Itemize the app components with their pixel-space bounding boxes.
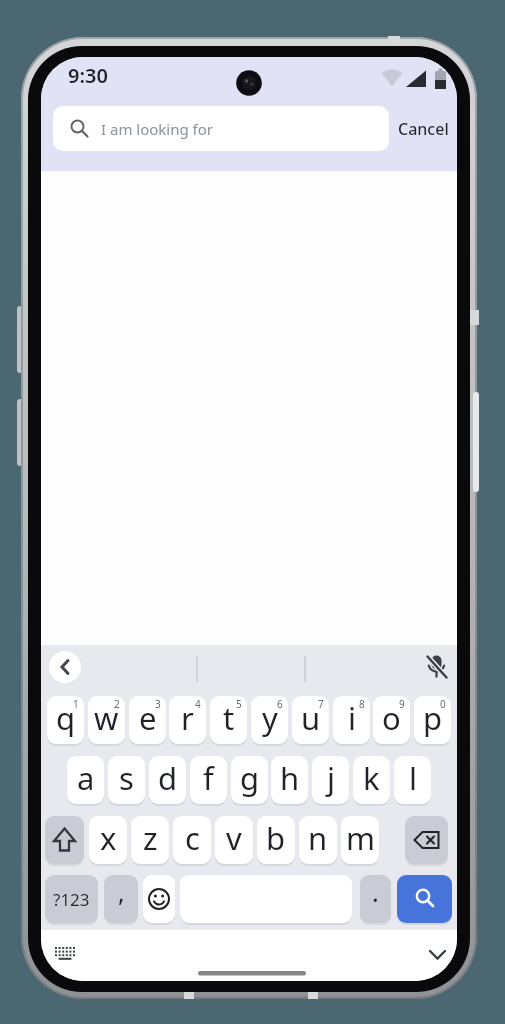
button[interactable]: x: [89, 816, 127, 864]
button[interactable]: g: [231, 756, 268, 804]
button[interactable]: s: [108, 756, 145, 804]
button[interactable]: c: [173, 816, 211, 864]
staticText: 1: [73, 697, 79, 711]
button[interactable]: Cancel: [392, 106, 454, 151]
button[interactable]: h: [271, 756, 308, 804]
button[interactable]: [47, 936, 85, 968]
button[interactable]: v: [215, 816, 253, 864]
staticText: t: [223, 697, 235, 739]
button[interactable]: [419, 650, 454, 685]
button[interactable]: p: [414, 696, 451, 744]
button[interactable]: [45, 816, 84, 864]
staticText: v: [226, 817, 242, 859]
button[interactable]: o: [373, 696, 410, 744]
staticText: s: [119, 757, 134, 799]
staticText: y: [262, 697, 278, 739]
button[interactable]: t: [210, 696, 247, 744]
button[interactable]: [143, 875, 175, 923]
staticText: w: [94, 697, 119, 739]
button[interactable]: [405, 816, 448, 864]
button[interactable]: .: [360, 875, 391, 923]
button[interactable]: d: [149, 756, 186, 804]
button[interactable]: [49, 651, 81, 683]
button[interactable]: y: [251, 696, 288, 744]
staticText: e: [139, 697, 157, 739]
staticText: 9: [399, 697, 405, 711]
button[interactable]: m: [341, 816, 379, 864]
staticText: m: [346, 817, 375, 859]
button[interactable]: k: [353, 756, 390, 804]
button[interactable]: q: [47, 696, 84, 744]
staticText: i: [348, 697, 356, 739]
button[interactable]: a: [67, 756, 104, 804]
button[interactable]: f: [190, 756, 227, 804]
staticText: 4: [195, 697, 201, 711]
staticText: p: [423, 697, 443, 739]
staticText: j: [327, 757, 335, 799]
staticText: 2: [114, 697, 120, 711]
staticText: I am looking for: [101, 119, 214, 139]
button[interactable]: u: [292, 696, 329, 744]
staticText: l: [409, 757, 417, 799]
staticText: 7: [318, 697, 324, 711]
staticText: 9:30: [68, 62, 108, 89]
staticText: h: [280, 757, 300, 799]
staticText: ,: [118, 875, 125, 909]
staticText: 3: [155, 697, 161, 711]
staticText: z: [143, 817, 158, 859]
button[interactable]: [397, 875, 452, 923]
staticText: 8: [359, 697, 365, 711]
button[interactable]: i: [333, 696, 370, 744]
button[interactable]: w: [88, 696, 125, 744]
button[interactable]: ?123: [45, 875, 98, 923]
staticText: b: [266, 817, 286, 859]
button[interactable]: [419, 936, 455, 968]
button[interactable]: z: [131, 816, 169, 864]
staticText: d: [158, 757, 178, 799]
staticText: 6: [277, 697, 283, 711]
button[interactable]: l: [394, 756, 431, 804]
staticText: o: [382, 697, 401, 739]
staticText: x: [100, 817, 117, 859]
staticText: f: [203, 757, 214, 799]
staticText: 5: [236, 697, 242, 711]
staticText: r: [181, 697, 194, 739]
staticText: u: [301, 697, 321, 739]
staticText: .: [372, 875, 379, 909]
staticText: 0: [440, 697, 446, 711]
button[interactable]: I am looking for: [53, 106, 389, 151]
button[interactable]: ,: [104, 875, 138, 923]
button[interactable]: r: [169, 696, 206, 744]
staticText: a: [77, 757, 95, 799]
staticText: n: [308, 817, 328, 859]
button[interactable]: e: [129, 696, 166, 744]
staticText: Cancel: [398, 118, 449, 140]
staticText: g: [240, 757, 260, 799]
staticText: q: [56, 697, 76, 739]
button[interactable]: b: [257, 816, 295, 864]
staticText: k: [363, 757, 380, 799]
button[interactable]: n: [299, 816, 337, 864]
staticText: ?123: [53, 888, 90, 911]
staticText: c: [185, 817, 200, 859]
button[interactable]: j: [312, 756, 349, 804]
